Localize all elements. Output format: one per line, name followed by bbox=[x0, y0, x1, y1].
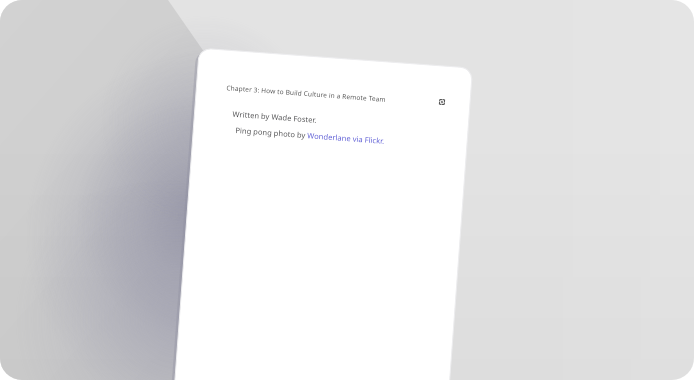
button[interactable]: Close bbox=[0, 0, 24, 24]
